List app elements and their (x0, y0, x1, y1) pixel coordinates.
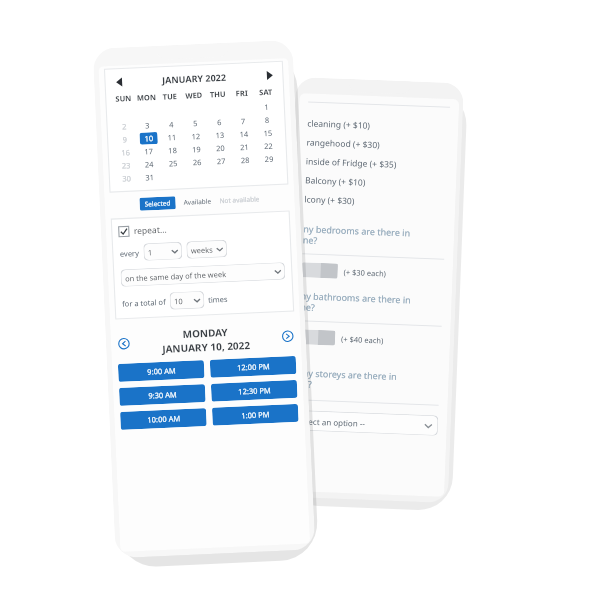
staticText: 9:30 AM (148, 389, 177, 401)
staticText: 12:00 PM (237, 361, 270, 373)
staticText: 19 (192, 144, 201, 154)
staticText: 25 (169, 158, 178, 168)
staticText: for a total of (122, 297, 166, 309)
staticText: 6 (217, 117, 222, 127)
staticText: 24 (145, 159, 154, 169)
button[interactable]: 4 (159, 117, 183, 131)
staticText: 15 (263, 128, 273, 138)
button[interactable]: 3 (136, 118, 159, 132)
staticText: 10:00 AM (147, 413, 181, 425)
button[interactable]: 8 (255, 112, 279, 126)
button[interactable]: 7 (231, 113, 255, 128)
button[interactable]: 15 (255, 125, 280, 139)
staticText: times (208, 294, 228, 305)
button[interactable]: Next month (260, 66, 277, 83)
button[interactable]: 12:00 PM (210, 356, 296, 378)
button[interactable]: 19 (184, 142, 208, 156)
button[interactable]: inside of Fridge (+ $35) (305, 151, 448, 176)
staticText: JANUARY 2022 (127, 69, 261, 87)
button[interactable]: 29 (256, 151, 281, 165)
staticText: 12:30 PM (238, 385, 271, 397)
button[interactable]: 13 (207, 128, 232, 142)
button[interactable]: 24 (137, 157, 161, 171)
staticText: 1 (264, 102, 269, 112)
button[interactable]: Balcony (+ $10) (305, 170, 447, 195)
button[interactable]: 27 (208, 154, 233, 168)
staticText: 31 (145, 172, 155, 182)
button[interactable]: 6 (207, 115, 231, 129)
staticText: 27 (216, 156, 226, 166)
button[interactable]: repeat... (119, 224, 167, 238)
button[interactable]: 30 (115, 171, 139, 185)
staticText: any storeys are there in ne? (297, 366, 397, 394)
button[interactable]: Previous day (117, 336, 131, 351)
button[interactable]: on the same day of the week (121, 262, 285, 287)
staticText: ny bedrooms are there in ne? (303, 222, 410, 250)
button[interactable]: 31 (138, 170, 162, 184)
button[interactable]: 9 (113, 132, 137, 146)
button[interactable]: 25 (160, 156, 185, 170)
button[interactable]: Stepper (299, 329, 335, 346)
staticText: 13 (215, 130, 225, 140)
staticText: every (120, 248, 140, 259)
staticText: 1:00 PM (241, 409, 270, 420)
button[interactable]: rangehood (+ $30) (306, 132, 449, 157)
button[interactable]: 16 (114, 145, 138, 159)
button[interactable]: 10:00 AM (120, 408, 207, 430)
staticText: 29 (264, 154, 274, 164)
button[interactable]: 23 (115, 158, 138, 172)
button[interactable]: Available (183, 195, 212, 209)
button[interactable]: 9:30 AM (119, 384, 206, 406)
button[interactable]: Not available (219, 192, 260, 207)
button[interactable]: weeks (186, 240, 227, 259)
staticText: 17 (144, 146, 153, 157)
staticText: 28 (240, 155, 250, 165)
button[interactable]: elect an option -- (296, 410, 438, 436)
staticText: lcony (+ $30) (304, 193, 355, 207)
button[interactable]: 28 (232, 152, 257, 167)
staticText: on the same day of the week (125, 269, 227, 283)
button[interactable]: 1:00 PM (212, 404, 299, 426)
button[interactable]: 21 (232, 139, 256, 154)
staticText: MON (135, 92, 158, 103)
staticText: 8 (265, 115, 270, 125)
staticText: WED (181, 90, 206, 101)
staticText: 30 (122, 173, 132, 184)
staticText: 1 (148, 247, 153, 257)
button[interactable]: 22 (256, 138, 280, 152)
staticText: Balcony (+ $10) (305, 174, 366, 189)
staticText: elect an option -- (302, 415, 366, 429)
staticText: ny bathrooms are there in ne? (300, 289, 412, 317)
button[interactable]: 12:30 PM (211, 380, 298, 402)
staticText: SUN (112, 93, 135, 104)
staticText: cleaning (+ $10) (307, 117, 370, 132)
button[interactable]: 1 (143, 242, 182, 261)
button[interactable]: 10 (170, 291, 204, 309)
button[interactable]: 20 (208, 141, 232, 155)
button[interactable]: Stepper (301, 262, 338, 279)
button[interactable]: Previous month (111, 73, 127, 90)
staticText: 21 (240, 142, 249, 152)
button[interactable]: 10 (139, 132, 158, 145)
button[interactable]: 17 (137, 144, 160, 158)
staticText: rangehood (+ $30) (306, 136, 381, 151)
button[interactable]: cleaning (+ $10) (307, 113, 450, 138)
button[interactable]: 1 (254, 99, 279, 113)
button[interactable]: 11 (159, 130, 184, 144)
staticText: 4 (169, 119, 174, 129)
button[interactable]: Next day (280, 329, 295, 343)
staticText: JANUARY 10, 2022 (162, 338, 250, 356)
button[interactable]: Selected (139, 196, 176, 211)
button[interactable]: 12 (183, 129, 208, 143)
button[interactable]: 14 (231, 126, 256, 141)
button[interactable]: 9:00 AM (118, 360, 205, 382)
staticText: FRI (229, 87, 254, 99)
button[interactable]: 2 (113, 119, 136, 133)
staticText: 7 (241, 116, 246, 126)
button[interactable]: 26 (184, 155, 209, 169)
staticText: 11 (167, 132, 177, 142)
button[interactable]: 18 (160, 143, 184, 157)
button[interactable]: 5 (183, 116, 207, 130)
button[interactable]: lcony (+ $30) (304, 189, 447, 214)
staticText: 23 (122, 160, 131, 171)
